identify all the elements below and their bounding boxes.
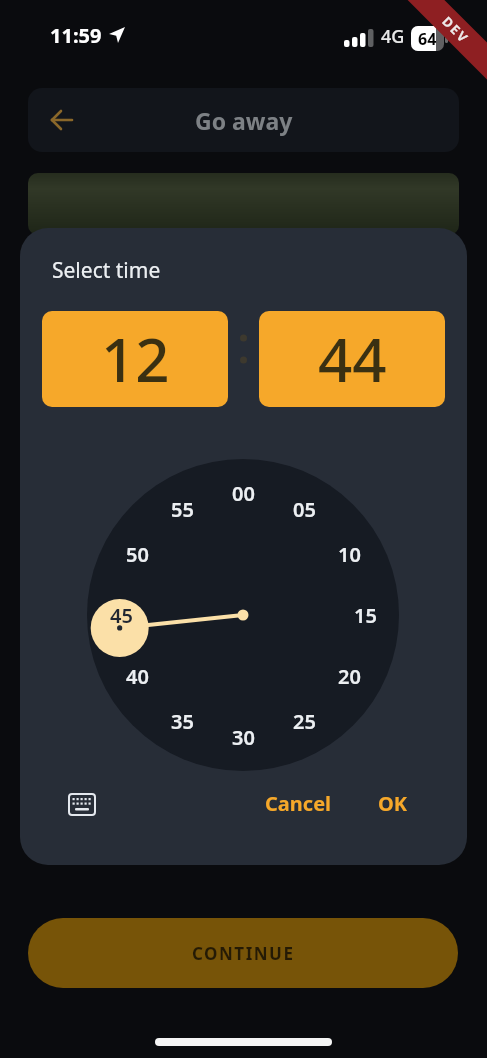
staticText: DEV xyxy=(438,12,474,48)
staticText: OK xyxy=(378,790,408,817)
staticText: Select time xyxy=(52,256,161,285)
staticText: 10 xyxy=(338,541,361,568)
staticText: 55 xyxy=(171,496,194,523)
staticText: 05 xyxy=(293,496,316,523)
staticText: 30 xyxy=(232,724,255,751)
staticText: CONTINUE xyxy=(192,942,295,965)
staticText: 25 xyxy=(293,708,316,735)
staticText: 35 xyxy=(171,708,194,735)
staticText: 44 xyxy=(318,318,387,400)
staticText: 15 xyxy=(354,602,377,629)
staticText: 45 xyxy=(110,602,133,629)
staticText: 50 xyxy=(126,541,149,568)
staticText: Go away xyxy=(195,105,293,136)
staticText: 64 xyxy=(418,28,437,50)
staticText: 12 xyxy=(101,318,170,400)
staticText: 20 xyxy=(338,663,361,690)
staticText: 00 xyxy=(232,480,255,507)
staticText: 11:59 xyxy=(50,22,102,49)
staticText: Cancel xyxy=(265,790,332,817)
staticText: 4G xyxy=(381,24,405,49)
staticText: 40 xyxy=(126,663,149,690)
